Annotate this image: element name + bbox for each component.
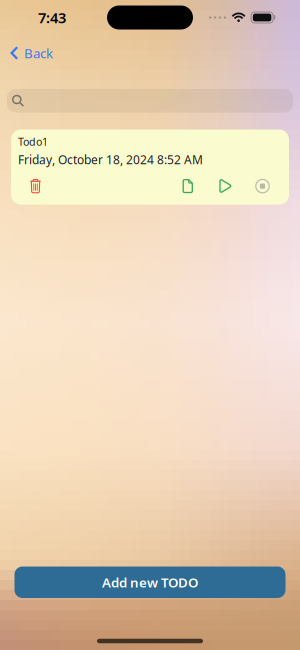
staticText: Back [24, 44, 53, 62]
button[interactable]: Transcript [182, 179, 193, 193]
button[interactable]: Back [0, 44, 53, 62]
button[interactable]: Play [193, 179, 232, 193]
button[interactable]: Delete [11, 179, 41, 193]
staticText: Friday, October 18, 2024 8:52 AM [18, 152, 203, 168]
button[interactable]: Search [0, 89, 300, 112]
staticText: Add new TODO [102, 573, 198, 591]
staticText: Todo1 [18, 134, 48, 149]
button[interactable]: Add new TODO [14, 566, 285, 598]
button[interactable]: Record [232, 179, 289, 194]
staticText: 7:43 [38, 8, 66, 27]
